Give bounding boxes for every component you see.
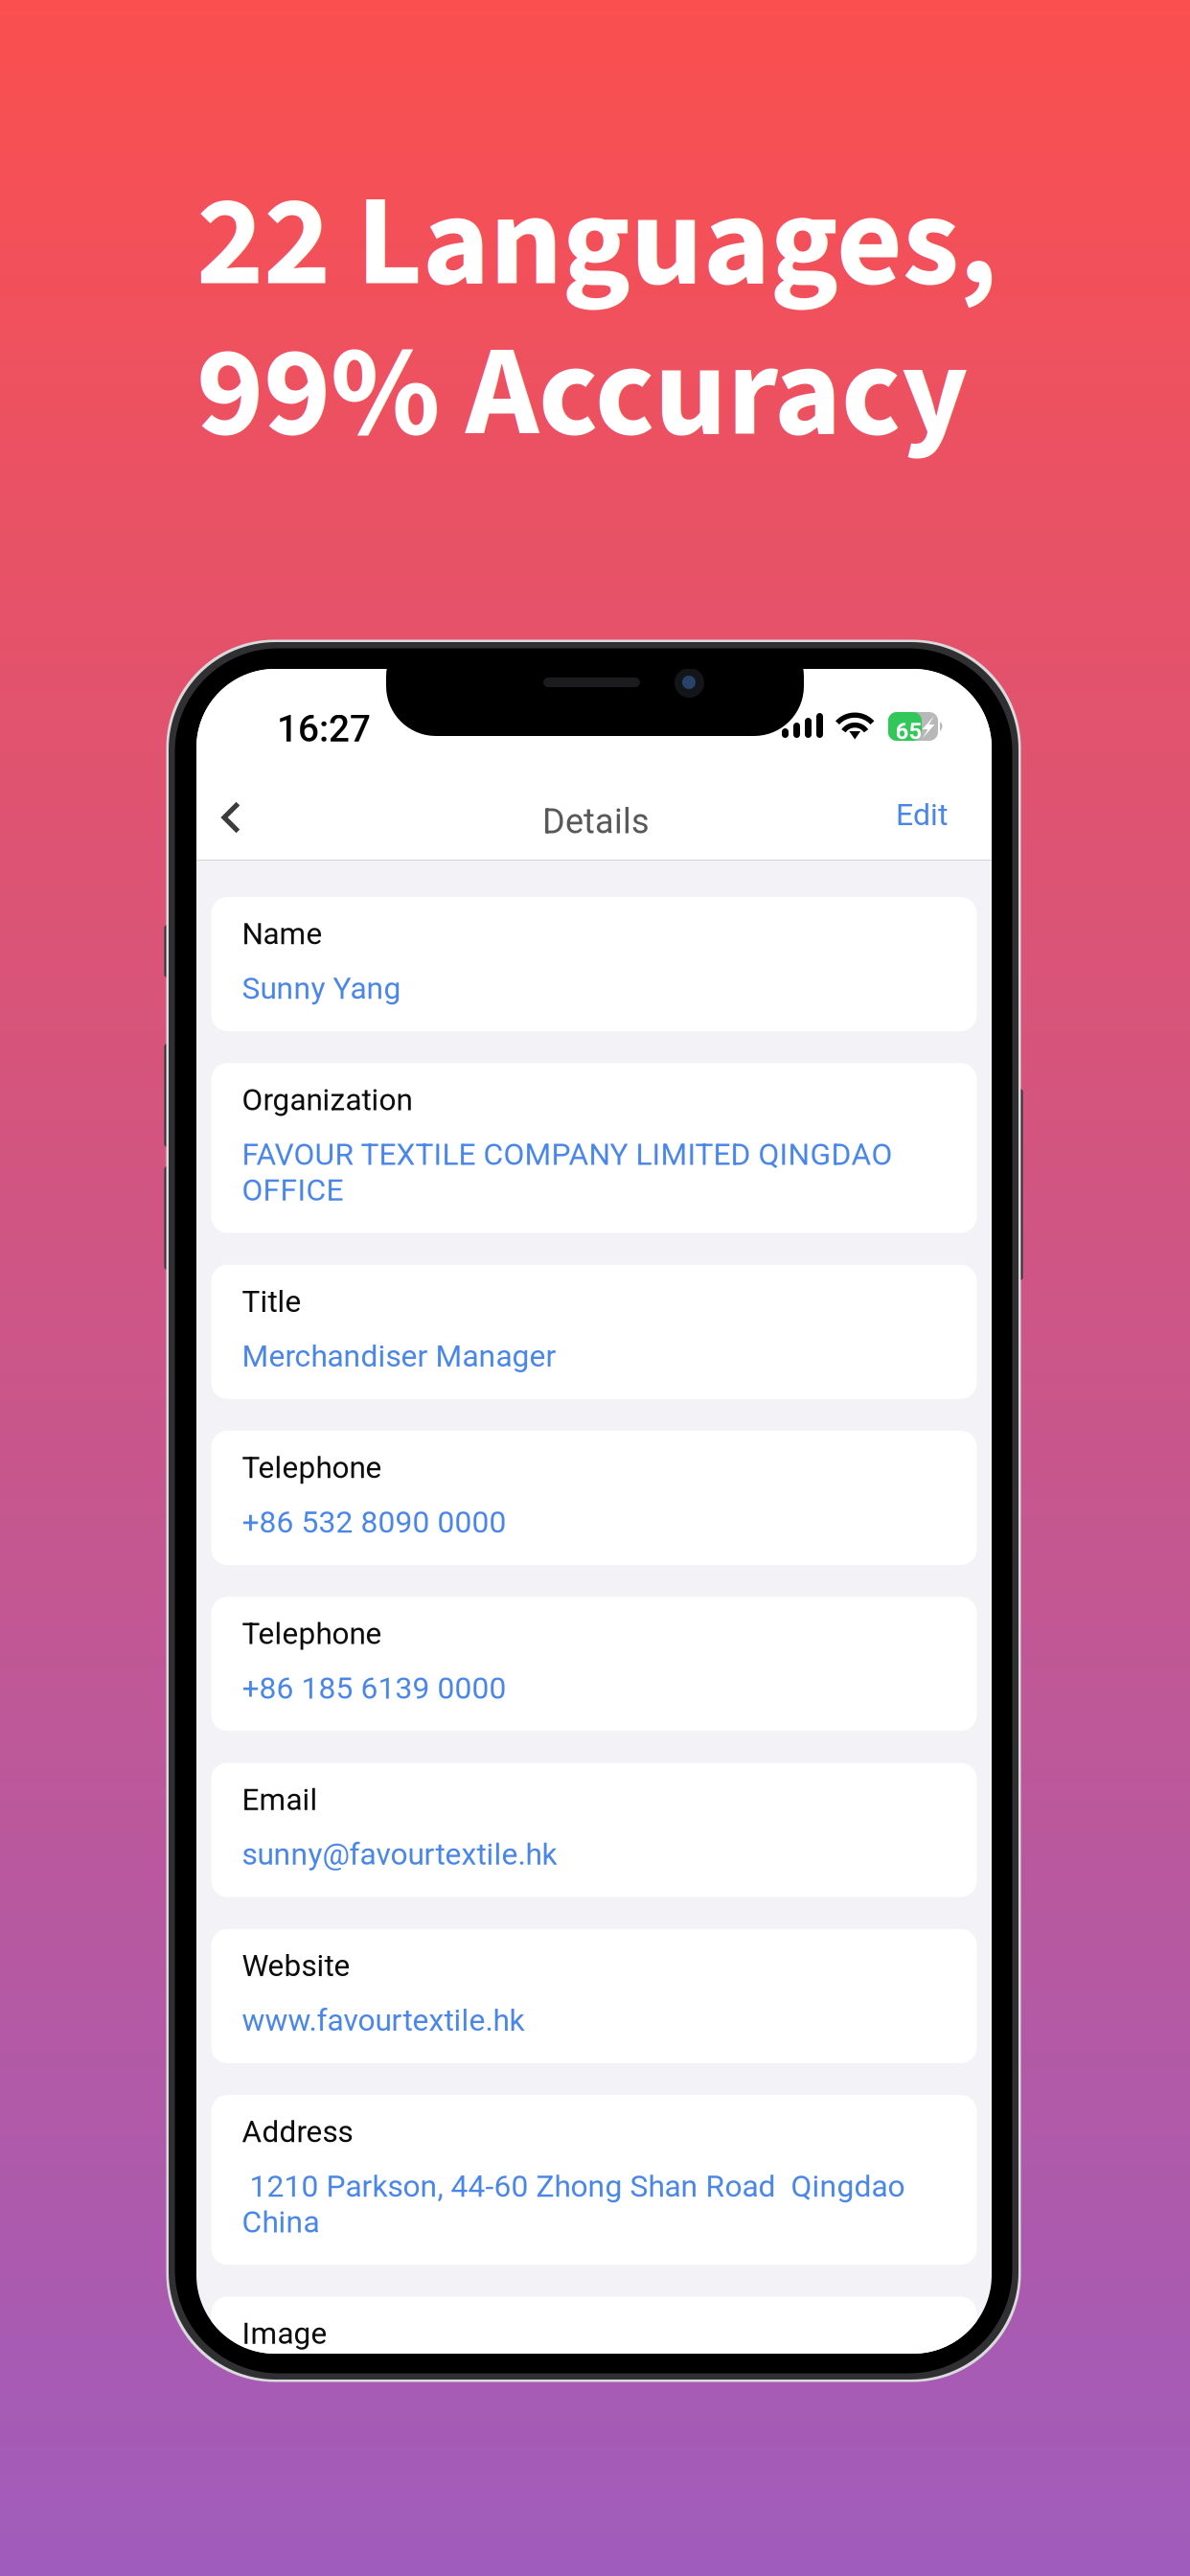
button[interactable]: Telephone: [211, 1431, 977, 1565]
staticText: +86 532 8090 0000: [242, 1504, 506, 1540]
button[interactable]: Image: [211, 2297, 977, 2376]
button[interactable]: Organization: [211, 1063, 977, 1233]
staticText: Sunny Yang: [242, 971, 401, 1006]
button[interactable]: Title: [211, 1265, 977, 1399]
staticText: 99% Accuracy: [196, 303, 968, 485]
button[interactable]: Telephone: [211, 1597, 977, 1731]
staticText: Telephone: [242, 1616, 382, 1651]
button[interactable]: Address: [211, 2095, 977, 2265]
staticText: Telephone: [242, 1450, 382, 1485]
staticText: sunny@favourtextile.hk: [242, 1837, 557, 1872]
staticText: 1210 Parkson, 44-60 Zhong Shan Road Qing…: [242, 2169, 905, 2240]
staticText: Details: [542, 801, 650, 842]
staticText: Merchandiser Manager: [242, 1338, 556, 1374]
staticText: 65: [895, 718, 922, 745]
staticText: Title: [242, 1284, 301, 1319]
button[interactable]: Back: [196, 765, 285, 853]
staticText: +86 185 6139 0000: [242, 1670, 506, 1706]
staticText: 22 Languages,: [196, 152, 997, 334]
button[interactable]: Website: [211, 1929, 977, 2063]
button[interactable]: Email: [211, 1763, 977, 1897]
staticText: FAVOUR TEXTILE COMPANY LIMITED QINGDAO O…: [242, 1137, 892, 1208]
button[interactable]: Edit: [823, 770, 948, 859]
staticText: Organization: [242, 1082, 412, 1118]
staticText: Image: [242, 2316, 327, 2351]
staticText: Name: [242, 916, 322, 952]
staticText: www.favourtextile.hk: [242, 2003, 525, 2038]
button[interactable]: Name: [211, 897, 977, 1031]
staticText: Address: [242, 2114, 353, 2149]
staticText: Edit: [896, 797, 948, 833]
staticText: Website: [242, 1948, 350, 1983]
staticText: 16:27: [277, 707, 371, 751]
staticText: Email: [242, 1782, 318, 1817]
